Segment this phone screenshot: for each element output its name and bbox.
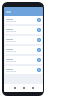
button[interactable]: Open <box>5 46 42 54</box>
button[interactable]: Open <box>5 16 42 24</box>
button[interactable]: Tab <box>19 84 28 92</box>
other: Open <box>37 68 41 72</box>
other: Open <box>37 18 41 22</box>
button[interactable]: Open <box>5 56 42 64</box>
other: Open <box>37 58 41 62</box>
other: Open <box>37 38 41 42</box>
button[interactable]: Tab <box>10 84 19 92</box>
button[interactable]: Open <box>5 26 42 34</box>
other: Open <box>37 28 41 32</box>
button[interactable]: Open <box>5 66 42 74</box>
button[interactable]: Open <box>5 36 42 44</box>
button[interactable]: Tab <box>28 84 37 92</box>
other: Open <box>37 48 41 52</box>
